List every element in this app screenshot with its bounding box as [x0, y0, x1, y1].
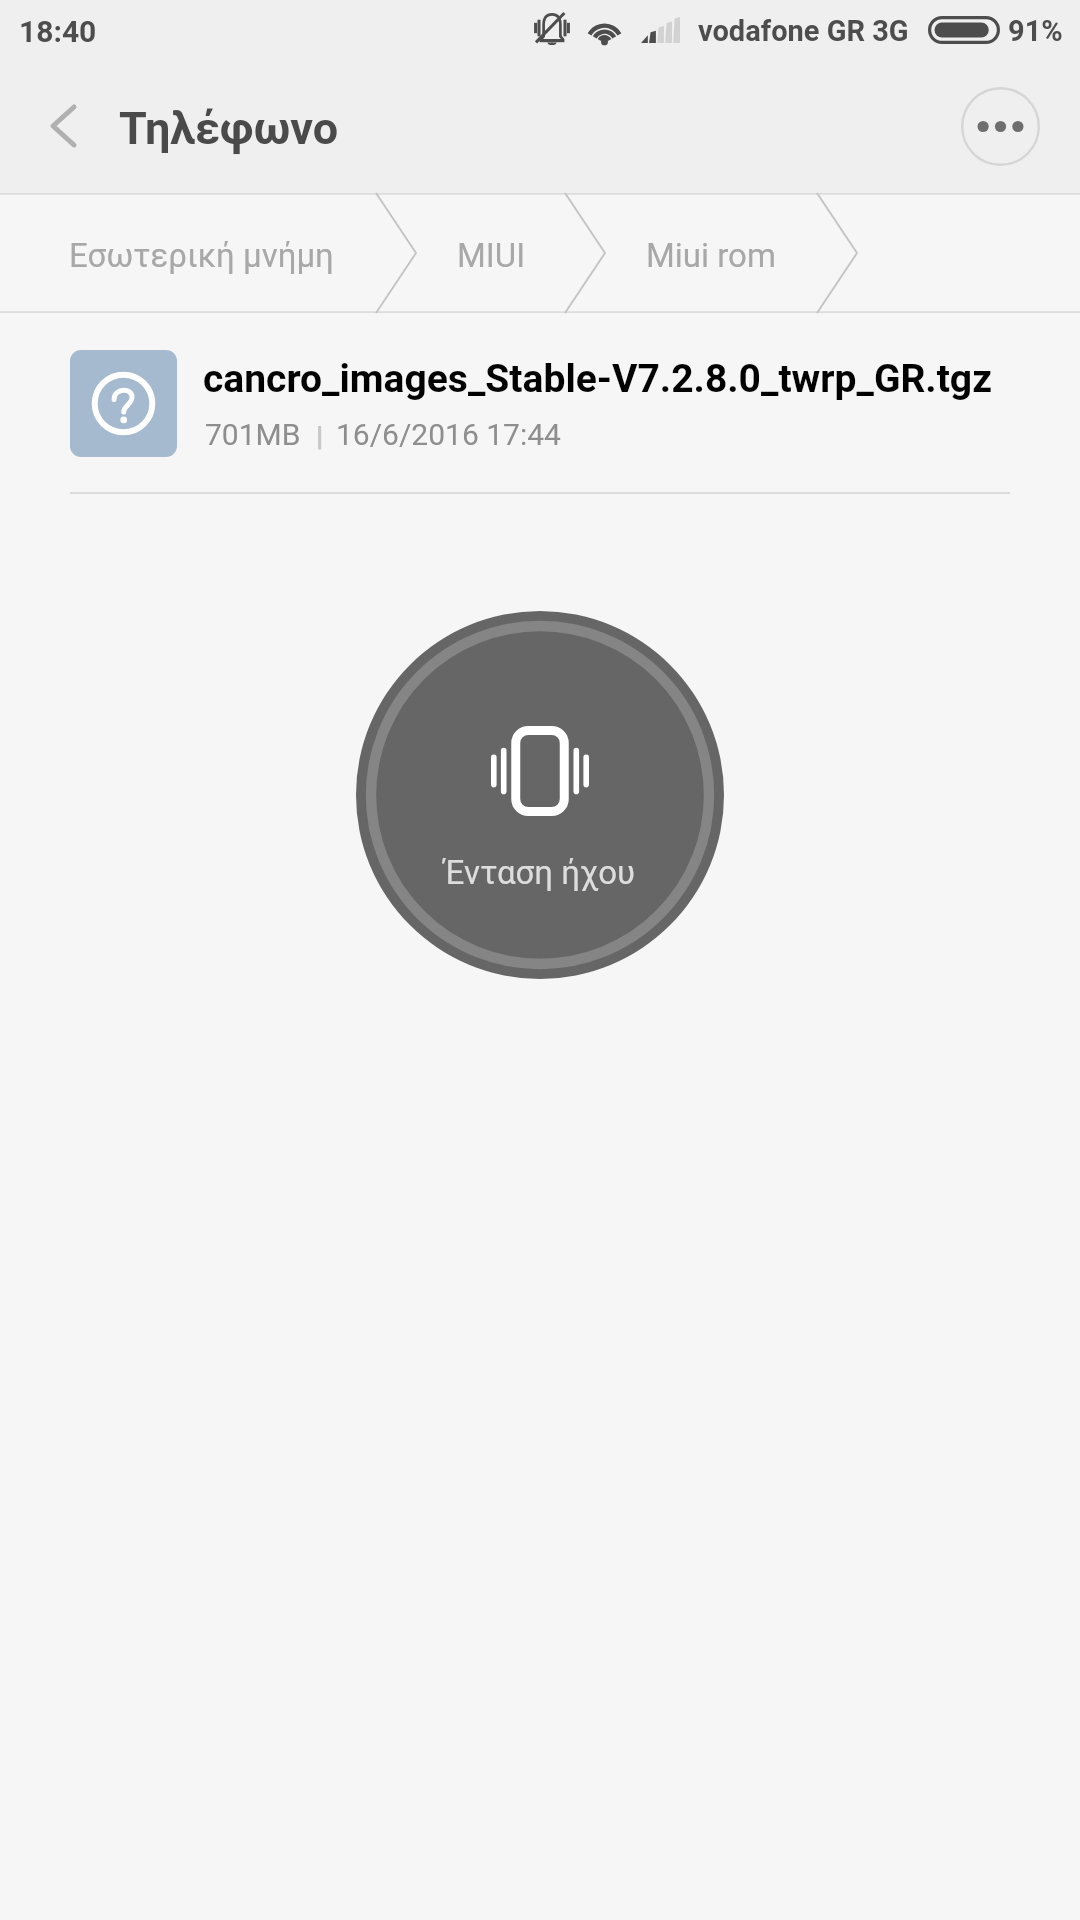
button[interactable]: Back — [18, 84, 102, 168]
button[interactable]: Volume — [356, 611, 724, 979]
staticText: Τηλέφωνο — [119, 102, 339, 155]
button[interactable]: Miui rom — [604, 193, 815, 313]
staticText: Miui rom — [646, 236, 776, 275]
staticText: MIUI — [457, 236, 526, 275]
button[interactable]: cancro_images_Stable-V7.2.8.0_twrp_GR.tg… — [0, 313, 1080, 494]
button[interactable]: Εσωτερική μνήμη — [27, 193, 376, 313]
staticText: 701MB — [205, 417, 301, 452]
button[interactable]: More options — [961, 87, 1040, 166]
button[interactable]: MIUI — [415, 193, 562, 313]
staticText: vodafone GR 3G — [698, 14, 909, 48]
staticText: cancro_images_Stable-V7.2.8.0_twrp_GR.tg… — [203, 356, 993, 402]
staticText: 16/6/2016 17:44 — [336, 417, 561, 452]
staticText: 91% — [1008, 14, 1063, 48]
staticText: Εσωτερική μνήμη — [69, 236, 334, 275]
staticText: 18:40 — [19, 14, 97, 49]
staticText: Ένταση ήχου — [444, 853, 636, 892]
